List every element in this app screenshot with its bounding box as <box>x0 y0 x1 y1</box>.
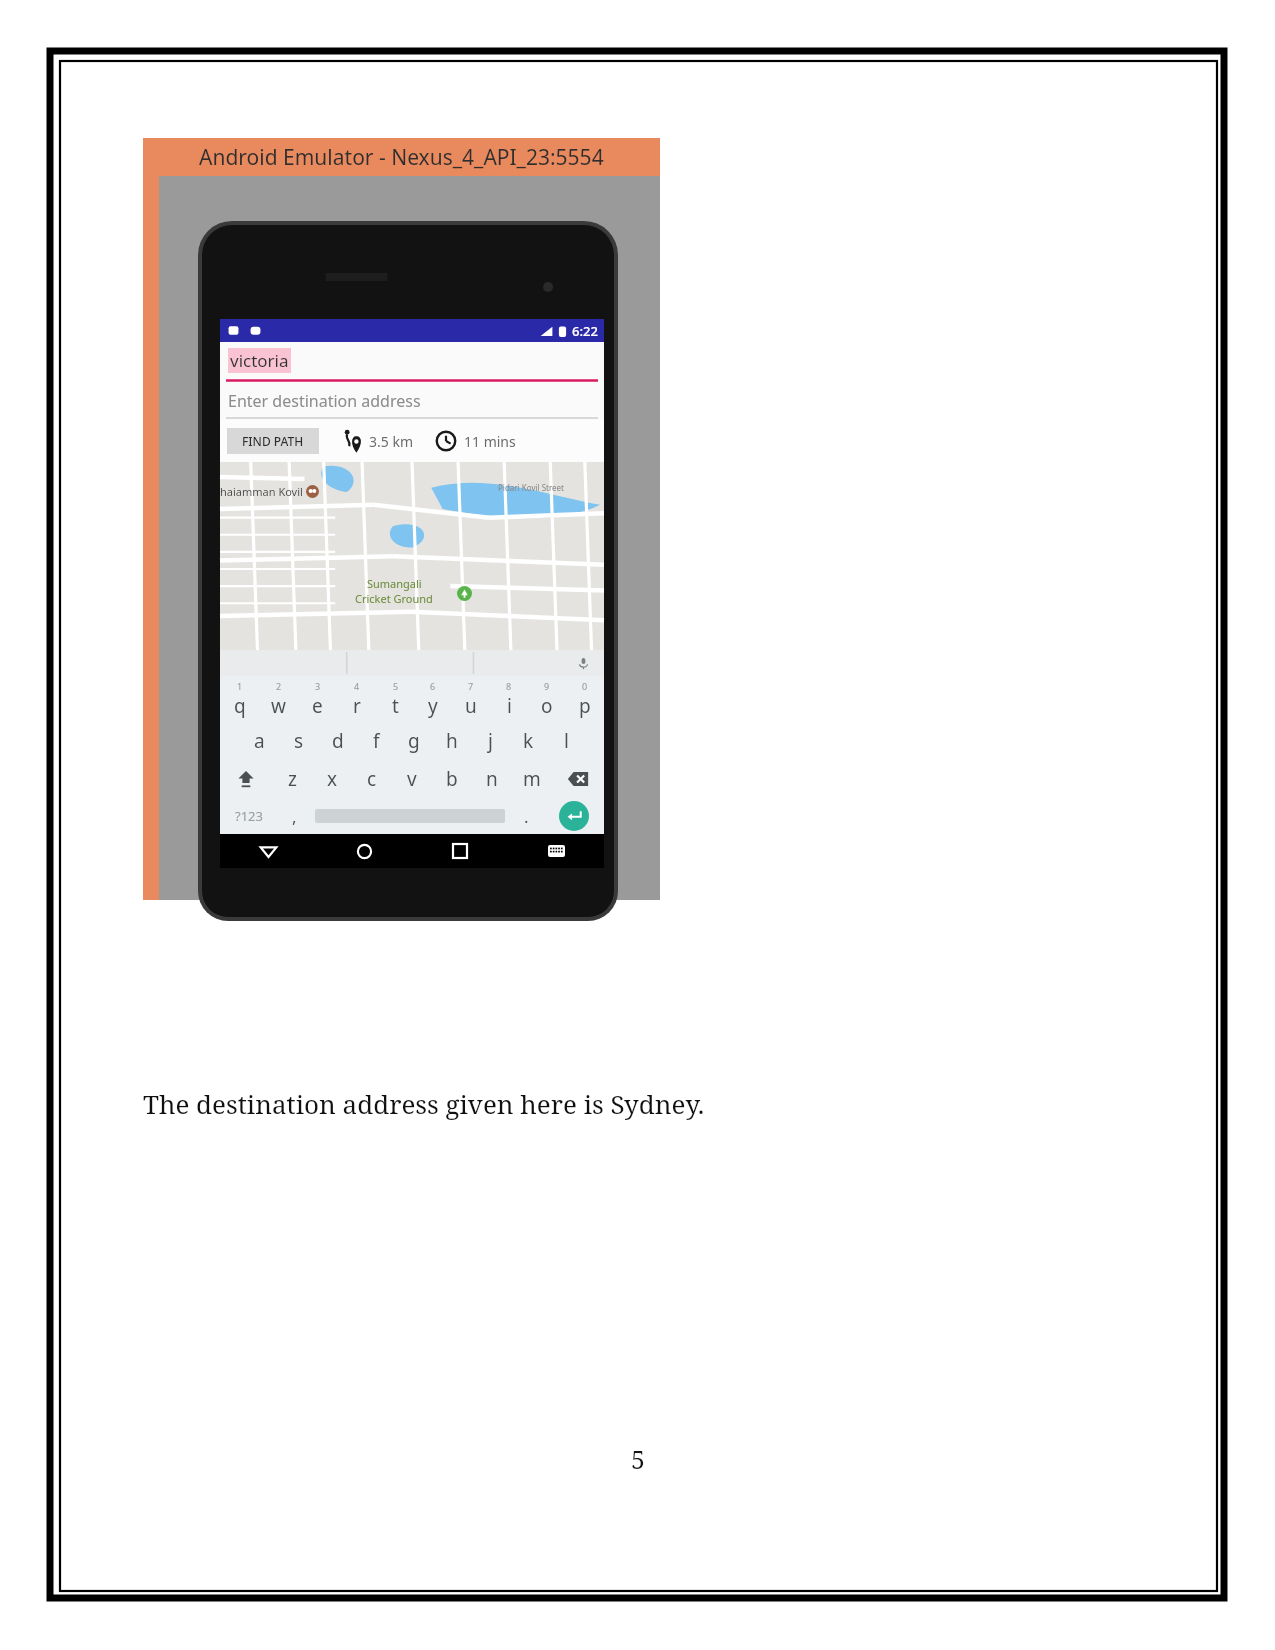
button[interactable]: 7 <box>452 676 490 722</box>
button[interactable]: Enter <box>559 801 589 831</box>
staticText: d <box>332 728 344 754</box>
button[interactable]: victoria <box>220 342 604 382</box>
staticText: o <box>541 693 553 719</box>
button[interactable]: s <box>279 722 318 760</box>
staticText: i <box>507 693 512 719</box>
staticText: Cricket Ground <box>355 591 433 606</box>
button[interactable]: 8 <box>490 676 528 722</box>
staticText: w <box>271 693 286 719</box>
button[interactable]: j <box>471 722 509 760</box>
button[interactable]: Recent apps <box>412 834 508 868</box>
button[interactable]: FIND PATH <box>227 428 319 454</box>
staticText: 9 <box>544 680 550 692</box>
staticText: h <box>446 728 458 754</box>
staticText: 1 <box>237 680 243 692</box>
button[interactable]: Backspace <box>552 760 604 798</box>
staticText: m <box>523 766 541 792</box>
button[interactable]: v <box>392 760 432 798</box>
button[interactable]: z <box>272 760 312 798</box>
staticText: 5 <box>631 1442 645 1476</box>
button[interactable]: ?123 <box>220 798 277 834</box>
staticText: Enter destination address <box>228 390 421 412</box>
button[interactable]: n <box>472 760 512 798</box>
button[interactable]: 3 <box>298 676 337 722</box>
button[interactable]: l <box>547 722 585 760</box>
staticText: 6 <box>430 680 436 692</box>
staticText: k <box>523 728 534 754</box>
staticText: x <box>327 766 338 792</box>
staticText: 5 <box>393 680 399 692</box>
staticText: t <box>392 693 399 719</box>
staticText: s <box>294 728 304 754</box>
button[interactable]: Home <box>316 834 412 868</box>
button[interactable]: a <box>240 722 279 760</box>
button[interactable]: 0 <box>566 676 604 722</box>
staticText: r <box>353 693 361 719</box>
button[interactable]: 6 <box>414 676 452 722</box>
button[interactable]: h <box>433 722 471 760</box>
staticText: z <box>288 766 297 792</box>
staticText: b <box>446 766 458 792</box>
staticText: j <box>488 728 493 754</box>
staticText: victoria <box>230 349 289 372</box>
button[interactable]: 4 <box>337 676 376 722</box>
staticText: The destination address given here is Sy… <box>143 1086 705 1121</box>
button[interactable]: k <box>509 722 547 760</box>
button[interactable]: . <box>509 798 543 834</box>
staticText: 4 <box>354 680 360 692</box>
staticText: 11 mins <box>464 432 516 451</box>
button[interactable]: , <box>277 798 311 834</box>
staticText: Android Emulator - Nexus_4_API_23:5554 <box>199 143 604 172</box>
button[interactable]: x <box>312 760 352 798</box>
button[interactable]: d <box>318 722 357 760</box>
staticText: p <box>579 693 591 719</box>
button[interactable]: 5 <box>376 676 414 722</box>
staticText: Sumangali <box>367 576 422 591</box>
button[interactable]: g <box>395 722 433 760</box>
button[interactable]: haiamman Kovil <box>220 462 604 676</box>
staticText: e <box>312 693 323 719</box>
staticText: 3 <box>315 680 321 692</box>
staticText: v <box>407 766 417 792</box>
staticText: . <box>524 805 529 828</box>
staticText: c <box>367 766 377 792</box>
staticText: 8 <box>506 680 512 692</box>
button[interactable]: 1 <box>220 676 259 722</box>
button[interactable]: m <box>512 760 552 798</box>
staticText: 0 <box>582 680 588 692</box>
button[interactable]: c <box>352 760 392 798</box>
button[interactable]: Enter destination address <box>220 382 604 420</box>
staticText: 3.5 km <box>369 432 413 451</box>
staticText: 2 <box>276 680 282 692</box>
button[interactable]: f <box>357 722 395 760</box>
button[interactable]: Shift <box>220 760 272 798</box>
staticText: , <box>292 805 297 828</box>
staticText: n <box>486 766 498 792</box>
staticText: ?123 <box>235 807 263 825</box>
staticText: y <box>428 693 438 719</box>
staticText: a <box>254 728 265 754</box>
button[interactable]: Hide keyboard <box>508 834 604 868</box>
staticText: 6:22 <box>572 322 598 340</box>
staticText: Pidari Kovil Street <box>498 482 564 493</box>
staticText: u <box>465 693 477 719</box>
staticText: FIND PATH <box>242 433 304 449</box>
button[interactable]: Back <box>220 834 316 868</box>
button[interactable]: b <box>432 760 472 798</box>
staticText: 7 <box>468 680 474 692</box>
button[interactable]: 9 <box>528 676 566 722</box>
button[interactable]: 2 <box>259 676 298 722</box>
staticText: haiamman Kovil <box>220 484 303 499</box>
staticText: g <box>408 728 420 754</box>
staticText: l <box>564 728 569 754</box>
staticText: f <box>373 728 380 754</box>
staticText: q <box>234 693 246 719</box>
